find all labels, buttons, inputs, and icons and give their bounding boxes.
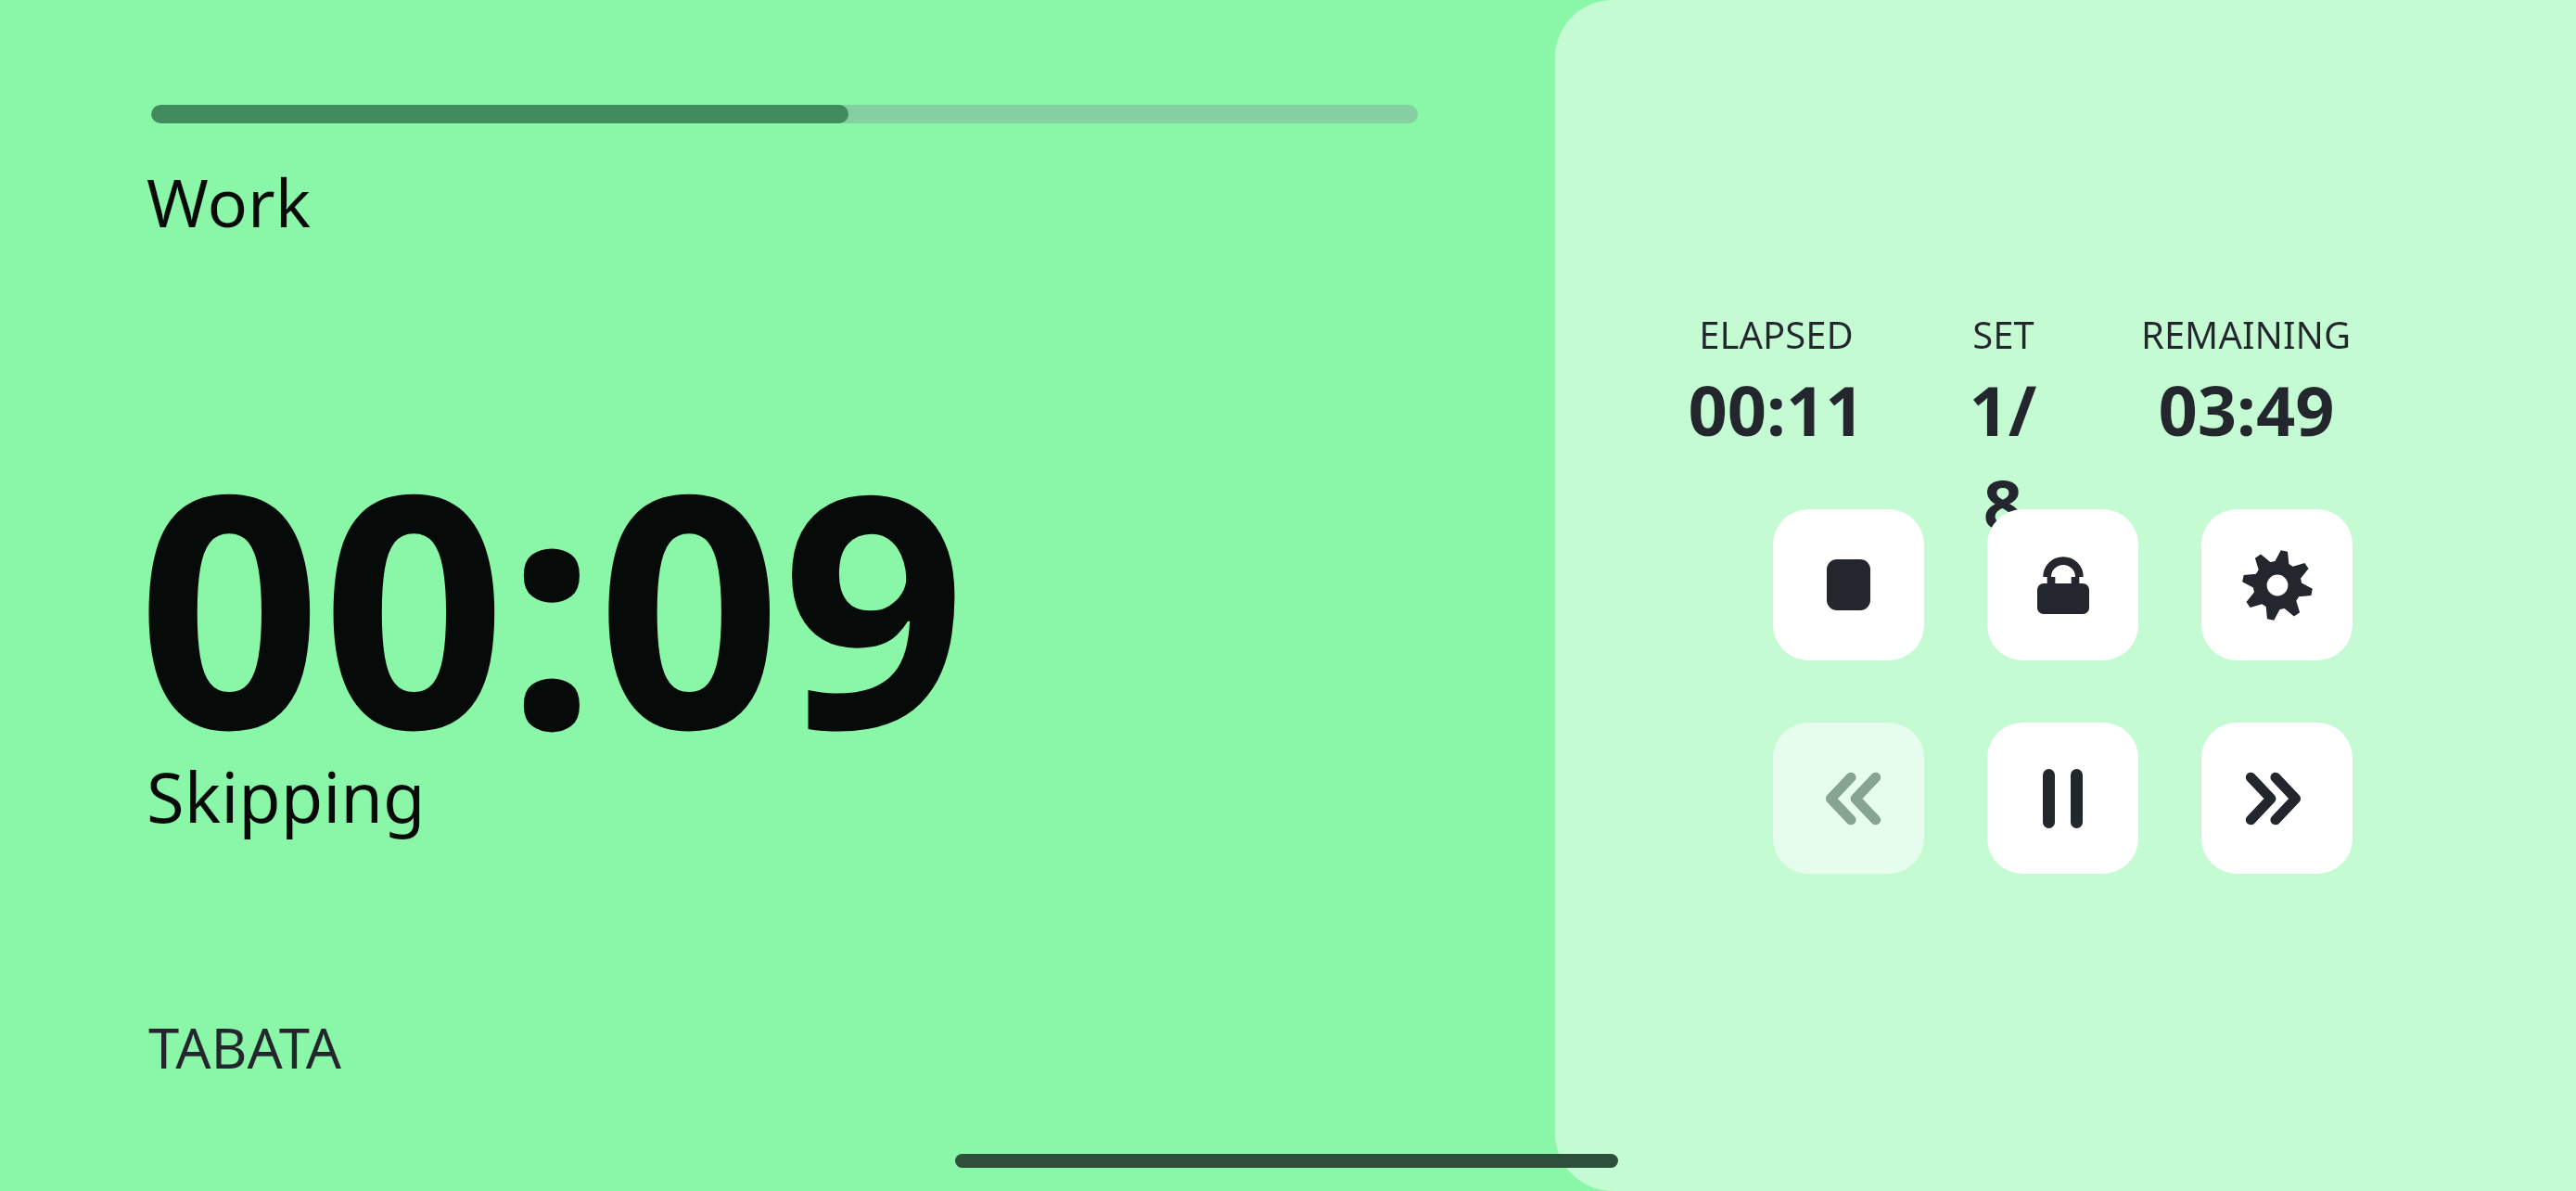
staticText: Skipping: [147, 749, 426, 843]
staticText: 03:49: [2158, 363, 2335, 456]
button[interactable]: Previous: [1773, 723, 1924, 874]
staticText: 00:09: [137, 383, 967, 823]
button[interactable]: Pause: [1987, 723, 2138, 874]
button[interactable]: Next: [2201, 723, 2353, 874]
staticText: 1/8: [1952, 363, 2054, 550]
staticText: SET: [1972, 309, 2034, 359]
staticText: 00:11: [1688, 363, 1865, 456]
button[interactable]: Settings: [2201, 509, 2353, 660]
staticText: ELAPSED: [1699, 309, 1854, 359]
button[interactable]: Stop: [1773, 509, 1924, 660]
staticText: REMAINING: [2141, 309, 2351, 359]
staticText: Work: [147, 156, 312, 247]
button[interactable]: Lock: [1987, 509, 2138, 660]
staticText: TABATA: [148, 1009, 342, 1085]
